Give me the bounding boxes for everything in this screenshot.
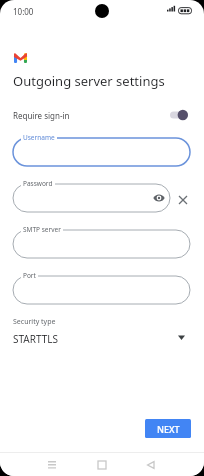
button[interactable]: Security type	[0, 317, 204, 346]
staticText: Outgoing server settings	[13, 72, 165, 90]
staticText: Password	[23, 179, 53, 188]
button[interactable]: Back	[138, 453, 162, 476]
staticText: SMTP server	[23, 225, 61, 234]
button[interactable]: Port	[13, 276, 190, 304]
button[interactable]: Clear	[175, 189, 193, 207]
button[interactable]	[170, 108, 188, 122]
button[interactable]: Require sign-in	[0, 104, 204, 126]
button[interactable]: NEXT	[145, 419, 191, 438]
button[interactable]: Recents	[40, 453, 64, 476]
button[interactable]: Show password	[152, 191, 166, 205]
button[interactable]: Home	[90, 453, 114, 476]
staticText: Require sign-in	[13, 110, 70, 121]
button[interactable]: SMTP server	[13, 230, 190, 258]
button[interactable]: Password	[13, 184, 170, 212]
staticText: NEXT	[157, 423, 180, 435]
button[interactable]: Username	[13, 138, 190, 166]
staticText: Port	[23, 271, 36, 280]
staticText: STARTTLS	[13, 332, 59, 346]
staticText: 10:00	[13, 6, 34, 17]
staticText: Security type	[13, 317, 56, 327]
staticText: Username	[23, 133, 55, 142]
